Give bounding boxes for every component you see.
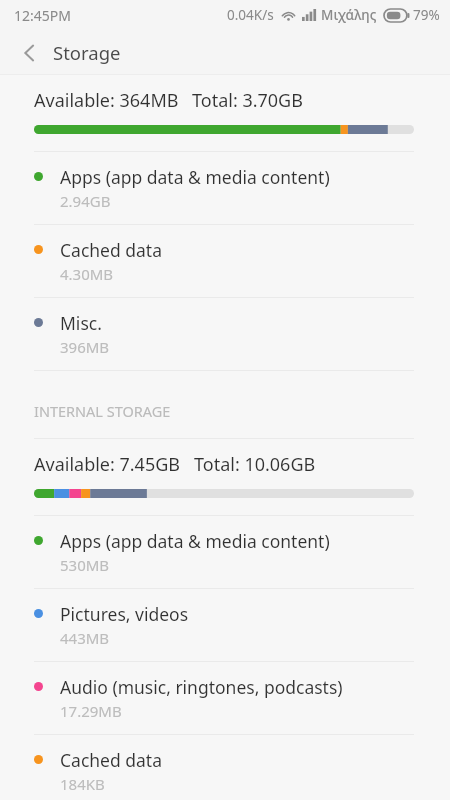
other: Back bbox=[18, 42, 40, 64]
staticText: 12:45PM bbox=[14, 6, 71, 25]
staticText: 530MB bbox=[60, 555, 110, 575]
staticText: Pictures, videos bbox=[60, 602, 189, 626]
staticText: Apps (app data & media content) bbox=[60, 529, 330, 553]
staticText: Apps (app data & media content) bbox=[60, 165, 330, 189]
staticText: 4.30MB bbox=[60, 264, 114, 284]
button[interactable]: Apps (app data & media content) bbox=[0, 516, 450, 589]
staticText: Total: 3.70GB bbox=[192, 88, 303, 113]
staticText: Μιχάλης bbox=[321, 6, 377, 24]
button[interactable]: Back bbox=[0, 30, 450, 75]
staticText: Storage bbox=[53, 40, 121, 65]
staticText: 0.04K/s bbox=[227, 6, 274, 24]
button[interactable]: Apps (app data & media content) bbox=[0, 152, 450, 225]
staticText: Audio (music, ringtones, podcasts) bbox=[60, 675, 343, 699]
staticText: Available: 7.45GB bbox=[34, 452, 181, 477]
button[interactable]: Cached data bbox=[0, 225, 450, 298]
staticText: 17.29MB bbox=[60, 701, 122, 721]
staticText: 184KB bbox=[60, 774, 105, 794]
button[interactable]: Cached data bbox=[0, 735, 450, 800]
staticText: Misc. bbox=[60, 311, 102, 335]
staticText: Available: 364MB bbox=[34, 88, 179, 113]
button[interactable]: Pictures, videos bbox=[0, 589, 450, 662]
button[interactable]: Audio (music, ringtones, podcasts) bbox=[0, 662, 450, 735]
staticText: Total: 10.06GB bbox=[194, 452, 316, 477]
staticText: 443MB bbox=[60, 628, 110, 648]
staticText: 2.94GB bbox=[60, 191, 111, 211]
staticText: Cached data bbox=[60, 748, 162, 772]
button[interactable]: Misc. bbox=[0, 298, 450, 371]
staticText: 396MB bbox=[60, 337, 110, 357]
staticText: Cached data bbox=[60, 238, 162, 262]
staticText: INTERNAL STORAGE bbox=[34, 401, 171, 421]
staticText: 79% bbox=[413, 6, 440, 24]
